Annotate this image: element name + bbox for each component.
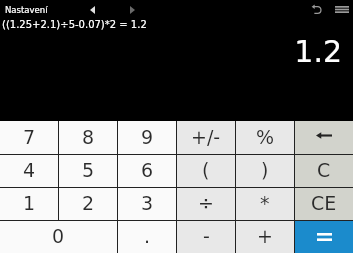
staticText: - <box>203 225 210 247</box>
staticText: 1 <box>23 192 36 214</box>
staticText: 3 <box>141 192 154 214</box>
staticText: 4 <box>23 159 36 181</box>
staticText: 7 <box>23 126 36 148</box>
button[interactable]: 9 <box>118 121 176 154</box>
button[interactable]: +/- <box>177 121 235 154</box>
staticText: ((1.25+2.1)÷5-0.07)*2 = 1.2 <box>2 19 147 31</box>
button[interactable]: Previous <box>84 2 100 18</box>
button[interactable]: 6 <box>118 155 176 187</box>
staticText: Nastavení <box>5 5 48 15</box>
button[interactable]: Menu <box>333 0 351 18</box>
button[interactable]: 5 <box>59 155 117 187</box>
button[interactable]: 2 <box>59 188 117 220</box>
button[interactable]: + <box>236 221 294 253</box>
staticText: 2 <box>82 192 95 214</box>
staticText: C <box>317 159 331 181</box>
staticText: ÷ <box>198 192 214 214</box>
button[interactable]: % <box>236 121 294 154</box>
button[interactable]: ( <box>177 155 235 187</box>
button[interactable] <box>295 221 353 253</box>
staticText: 0 <box>52 225 65 247</box>
button[interactable]: 8 <box>59 121 117 154</box>
button[interactable]: . <box>118 221 176 253</box>
button[interactable]: - <box>177 221 235 253</box>
staticText: 6 <box>141 159 154 181</box>
button[interactable]: ) <box>236 155 294 187</box>
staticText: % <box>256 126 275 148</box>
button[interactable]: Undo <box>307 0 325 18</box>
button[interactable]: 7 <box>0 121 58 154</box>
button[interactable]: 0 <box>0 221 117 253</box>
staticText: ( <box>202 159 210 181</box>
button[interactable]: ÷ <box>177 188 235 220</box>
staticText: . <box>144 225 151 247</box>
staticText: 1.2 <box>294 34 342 69</box>
button[interactable]: * <box>236 188 294 220</box>
button[interactable]: 1 <box>0 188 58 220</box>
staticText: ) <box>261 159 269 181</box>
staticText: * <box>260 192 270 214</box>
staticText: 5 <box>82 159 95 181</box>
button[interactable]: 3 <box>118 188 176 220</box>
staticText: + <box>257 225 273 247</box>
staticText: 8 <box>82 126 95 148</box>
button[interactable]: Next <box>124 2 140 18</box>
staticText: 9 <box>141 126 154 148</box>
button[interactable]: 4 <box>0 155 58 187</box>
button[interactable]: CE <box>295 188 353 220</box>
button[interactable] <box>295 121 353 154</box>
button[interactable]: C <box>295 155 353 187</box>
staticText: +/- <box>191 126 221 148</box>
staticText: CE <box>311 192 337 214</box>
